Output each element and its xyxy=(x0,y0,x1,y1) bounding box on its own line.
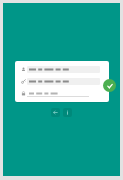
button[interactable]: Confirm xyxy=(103,79,116,92)
button[interactable] xyxy=(19,77,105,86)
button[interactable] xyxy=(19,89,105,98)
button[interactable] xyxy=(19,65,105,74)
button[interactable]: Back xyxy=(51,108,60,117)
button[interactable]: Info xyxy=(63,108,72,117)
